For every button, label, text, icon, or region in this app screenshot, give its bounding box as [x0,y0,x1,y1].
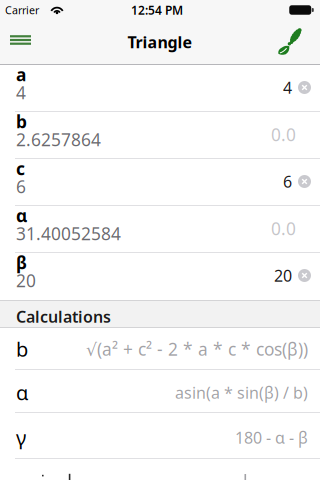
button[interactable]: Clear text [298,175,311,188]
staticText: c [16,157,25,180]
staticText: β [16,251,27,274]
staticText: Carrier [5,3,39,17]
staticText: 20 [16,269,36,292]
staticText: Calculations [16,306,111,327]
staticText: 180 - α - β [235,427,308,448]
staticText: 20 [274,265,292,286]
staticText: b [16,336,28,362]
staticText: 31.40052584 [16,222,121,245]
staticText: 2.6257864 [16,128,101,151]
staticText: α [16,204,27,227]
button[interactable]: γ [0,413,320,459]
button[interactable]: Menu [0,18,39,62]
staticText: 6 [283,171,292,192]
staticText: 12:54 PM [131,2,183,18]
staticText: 0.0 [271,123,296,146]
button[interactable]: b [0,328,320,370]
button[interactable]: Clear text [298,81,311,94]
button[interactable]: β [0,253,320,300]
button[interactable]: α [0,370,320,413]
staticText: asin(a * sin(β) / b) [175,382,308,403]
staticText: a [16,63,26,86]
staticText: 4 [283,77,292,98]
staticText: Triangle [127,31,192,53]
staticText: √(a² + c² - 2 * a * c * cos(β)) [86,337,308,360]
staticText: γ [16,424,26,451]
button[interactable]: c [0,159,320,206]
button[interactable]: a [0,65,320,112]
staticText: 0.0 [271,217,296,240]
button[interactable]: b [0,112,320,159]
button[interactable]: α [0,206,320,253]
staticText: 6 [16,175,26,198]
staticText: α [16,379,28,406]
staticText: b [16,110,27,133]
staticText: 4 [16,81,26,104]
button[interactable]: Clear text [298,269,311,282]
button[interactable]: Edit [278,26,320,54]
